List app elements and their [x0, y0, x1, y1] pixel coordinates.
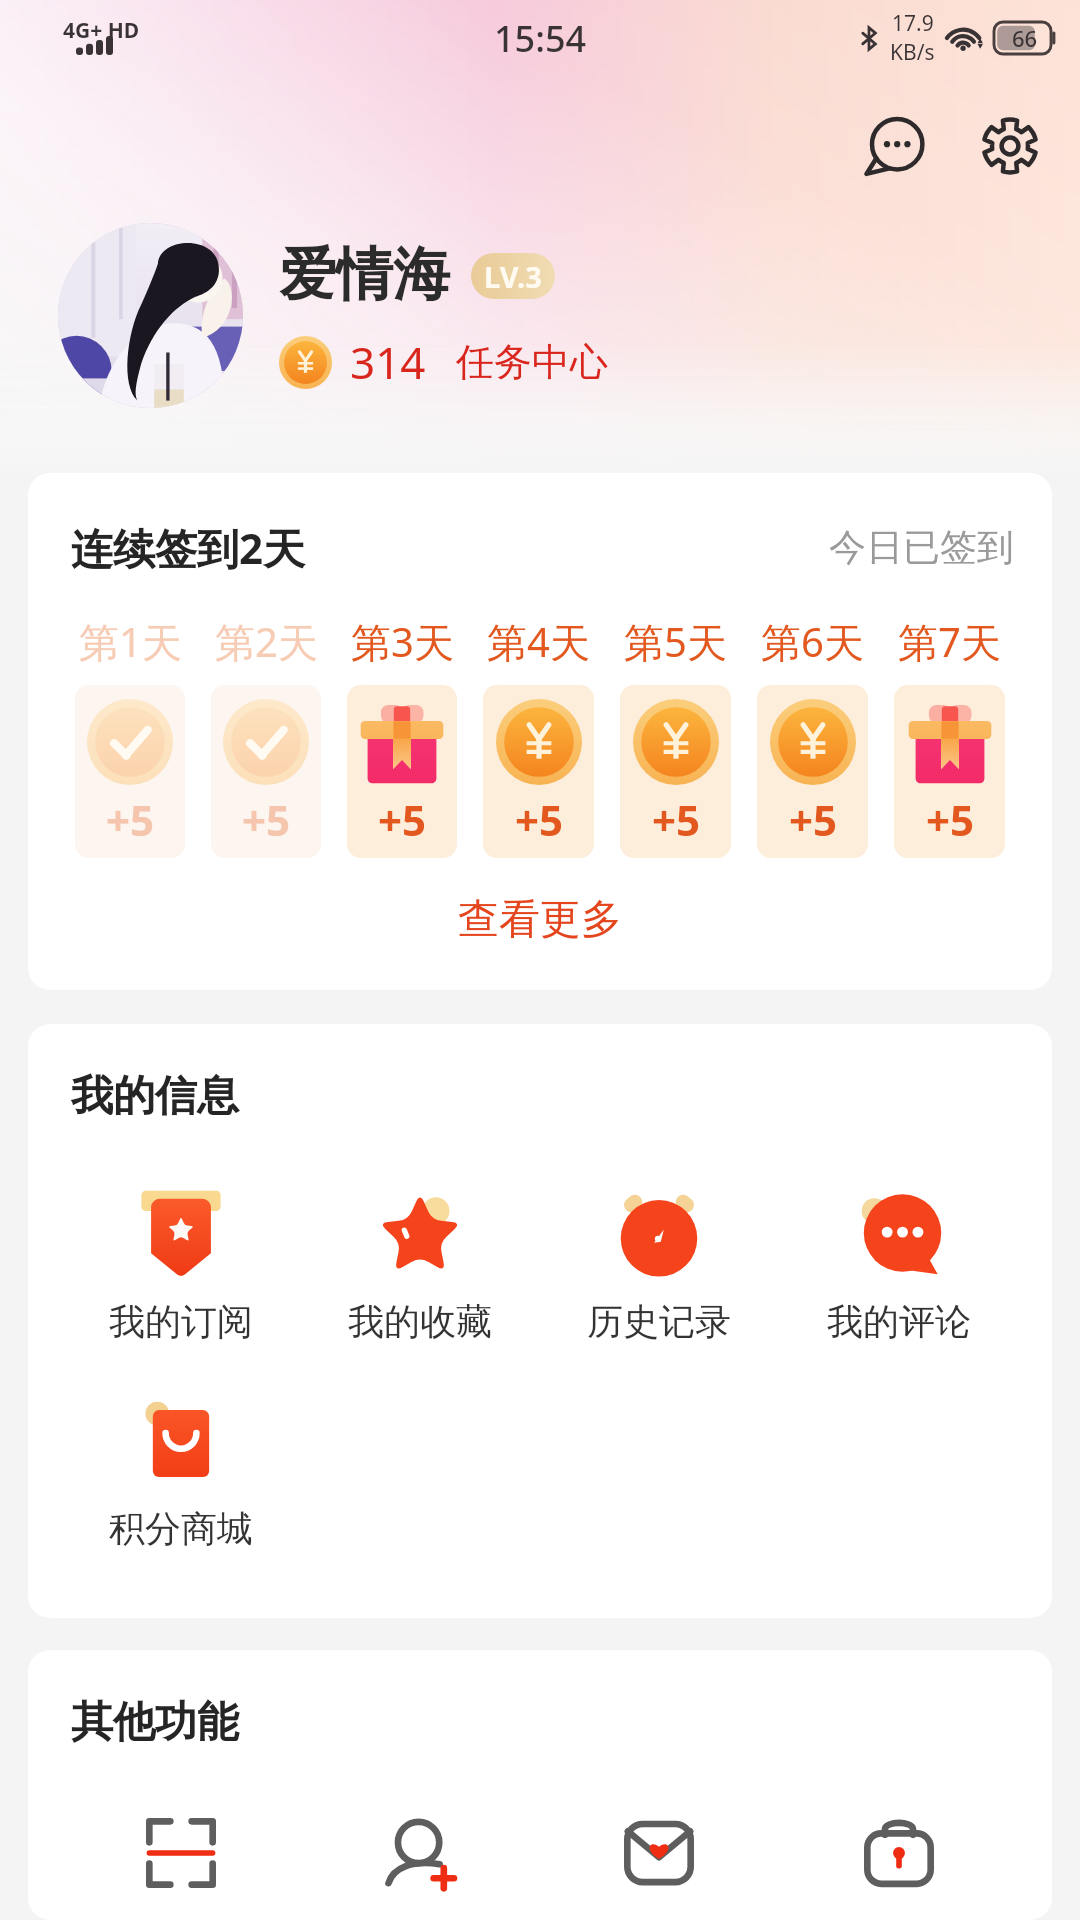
staticText: 我的收藏	[348, 1299, 492, 1344]
staticText: LV.3	[484, 257, 542, 296]
button[interactable]: 历史记录	[539, 1189, 779, 1344]
button[interactable]: Messages	[539, 1818, 779, 1888]
staticText: +5	[378, 791, 427, 848]
staticText: +5	[652, 791, 701, 848]
staticText: 第3天	[351, 614, 454, 669]
button[interactable]: Messages	[855, 105, 937, 187]
staticText: 第5天	[624, 614, 727, 669]
staticText: 积分商城	[109, 1506, 253, 1551]
button[interactable]: 查看更多	[450, 886, 630, 954]
staticText: 其他功能	[71, 1696, 239, 1749]
staticText: 4G+ HD	[63, 16, 140, 45]
button[interactable]: +5	[211, 685, 321, 858]
staticText: 今日已签到	[829, 524, 1014, 571]
button[interactable]: 任务中心	[456, 338, 608, 386]
button[interactable]: +5	[75, 685, 185, 858]
button[interactable]: +5	[620, 685, 731, 858]
button[interactable]: +5	[757, 685, 868, 858]
staticText: 15:54	[494, 14, 587, 63]
staticText: +5	[926, 791, 975, 848]
button[interactable]: Avatar	[58, 223, 243, 408]
button[interactable]: 积分商城	[61, 1396, 300, 1551]
button[interactable]: 我的收藏	[300, 1189, 539, 1344]
button[interactable]: Toolbox	[779, 1818, 1019, 1888]
staticText: 查看更多	[458, 894, 622, 946]
staticText: 314	[350, 332, 426, 392]
button[interactable]: +5	[483, 685, 594, 858]
staticText: 17.9	[892, 9, 934, 38]
button[interactable]: 我的评论	[779, 1189, 1019, 1344]
button[interactable]: 我的订阅	[61, 1189, 300, 1344]
button[interactable]: Add friend	[300, 1818, 539, 1888]
staticText: 爱情海	[279, 239, 450, 311]
staticText: 任务中心	[456, 338, 608, 386]
button[interactable]: +5	[347, 685, 457, 858]
staticText: 我的评论	[827, 1299, 971, 1344]
button[interactable]: +5	[894, 685, 1005, 858]
staticText: +5	[242, 791, 291, 848]
staticText: 我的信息	[71, 1070, 239, 1123]
staticText: 我的订阅	[109, 1299, 253, 1344]
button[interactable]: Scan	[61, 1818, 300, 1888]
staticText: 第7天	[898, 614, 1001, 669]
staticText: 连续签到2天	[71, 519, 306, 576]
staticText: 第6天	[761, 614, 864, 669]
staticText: 第4天	[487, 614, 590, 669]
staticText: 66	[1012, 23, 1038, 53]
staticText: +5	[106, 791, 155, 848]
staticText: 第1天	[79, 614, 182, 669]
staticText: 历史记录	[587, 1299, 731, 1344]
staticText: +5	[515, 791, 564, 848]
button[interactable]: Settings	[969, 105, 1051, 187]
staticText: +5	[789, 791, 838, 848]
staticText: 第2天	[215, 614, 318, 669]
staticText: KB/s	[890, 38, 935, 67]
